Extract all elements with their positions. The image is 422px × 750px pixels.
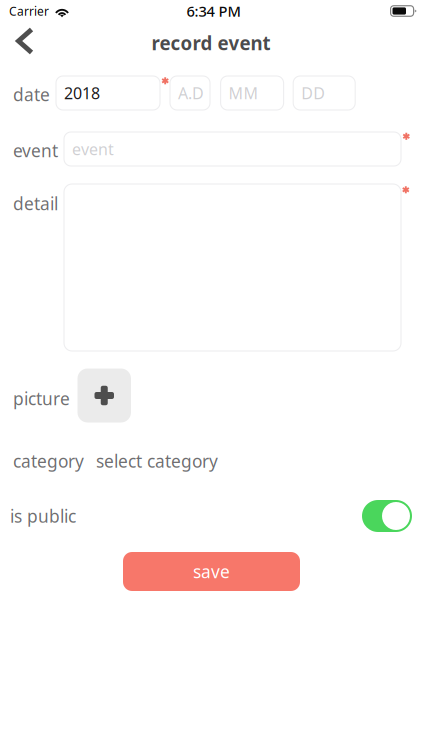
staticText: Carrier — [9, 3, 49, 19]
staticText: save — [193, 560, 230, 583]
staticText: DD — [301, 82, 325, 104]
staticText: select category — [96, 449, 218, 472]
staticText: is public — [10, 504, 76, 527]
staticText: date — [13, 83, 50, 106]
button[interactable]: save — [123, 552, 300, 591]
button[interactable]: is public — [362, 500, 412, 532]
staticText: picture — [13, 387, 70, 410]
button[interactable]: category — [0, 446, 422, 476]
staticText: 2018 — [64, 82, 100, 104]
staticText: record event — [151, 31, 270, 55]
staticText: category — [13, 449, 84, 472]
button[interactable]: Add picture — [77, 368, 131, 422]
button[interactable]: Back — [0, 26, 48, 60]
staticText: detail — [13, 192, 58, 215]
staticText: event — [72, 138, 114, 160]
staticText: MM — [229, 82, 259, 104]
staticText: 6:34 PM — [186, 1, 240, 21]
staticText: event — [13, 139, 58, 162]
staticText: A.D — [178, 82, 204, 104]
